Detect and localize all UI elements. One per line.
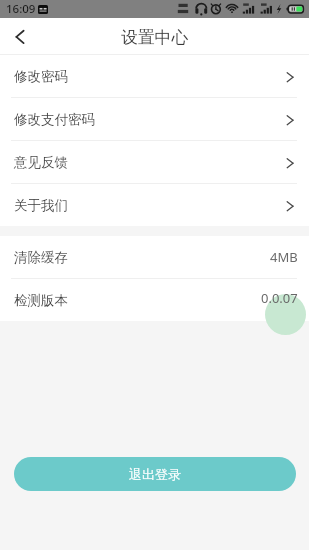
button[interactable]: 清除缓存 <box>0 236 309 279</box>
button[interactable]: 修改密码 <box>0 55 309 98</box>
button[interactable]: 修改支付密码 <box>0 98 309 141</box>
button[interactable]: 退出登录 <box>14 457 296 491</box>
staticText: 4MB <box>270 248 298 266</box>
staticText: 检测版本 <box>14 292 68 309</box>
staticText: 清除缓存 <box>14 249 68 266</box>
button[interactable]: Back <box>0 18 40 54</box>
button[interactable]: 关于我们 <box>0 184 309 226</box>
staticText: 意见反馈 <box>14 154 68 171</box>
staticText: 0.0.07 <box>261 289 298 307</box>
staticText: 16:09 <box>6 1 36 17</box>
staticText: 退出登录 <box>129 466 181 482</box>
staticText: 关于我们 <box>14 197 68 214</box>
staticText: 设置中心 <box>121 27 189 48</box>
staticText: 修改支付密码 <box>14 111 95 128</box>
button[interactable]: 意见反馈 <box>0 141 309 184</box>
staticText: 修改密码 <box>14 68 68 85</box>
button[interactable]: 检测版本 <box>0 279 309 321</box>
